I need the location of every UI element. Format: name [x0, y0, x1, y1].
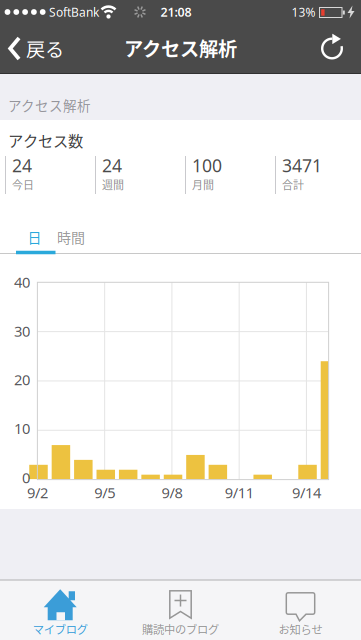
staticText: 合計: [282, 176, 304, 192]
staticText: 9/5: [94, 482, 115, 502]
staticText: アクセス解析: [124, 34, 237, 62]
staticText: 0: [22, 467, 30, 487]
staticText: 時間: [57, 227, 85, 247]
button[interactable]: 日: [14, 222, 54, 252]
staticText: 21:08: [160, 3, 191, 20]
staticText: 20: [14, 370, 30, 390]
staticText: 24: [102, 153, 122, 177]
button[interactable]: 購読中のブログ: [120, 580, 240, 640]
staticText: 30: [14, 321, 30, 341]
staticText: 13%: [291, 4, 315, 20]
button[interactable]: マイブログ: [0, 580, 120, 640]
staticText: マイブログ: [33, 621, 88, 637]
staticText: 9/2: [27, 482, 48, 502]
staticText: 10: [14, 418, 30, 438]
staticText: 9/11: [225, 482, 254, 502]
button[interactable]: 更新: [310, 25, 354, 69]
staticText: 今日: [12, 176, 34, 192]
staticText: アクセス解析: [8, 95, 91, 115]
button[interactable]: 時間: [49, 222, 93, 252]
staticText: 日: [27, 227, 41, 247]
staticText: 9/14: [292, 482, 321, 502]
staticText: お知らせ: [278, 621, 322, 637]
staticText: 購読中のブログ: [142, 621, 219, 637]
staticText: 週間: [102, 176, 124, 192]
staticText: 100: [192, 153, 222, 177]
staticText: 9/8: [161, 482, 182, 502]
staticText: 月間: [192, 176, 214, 192]
staticText: アクセス数: [8, 129, 83, 151]
button[interactable]: お知らせ: [241, 580, 361, 640]
button[interactable]: 戻る: [8, 26, 64, 70]
staticText: 24: [12, 153, 32, 177]
staticText: 40: [14, 272, 30, 292]
staticText: 戻る: [26, 35, 64, 62]
staticText: SoftBank: [49, 4, 99, 20]
staticText: 3471: [282, 153, 322, 177]
